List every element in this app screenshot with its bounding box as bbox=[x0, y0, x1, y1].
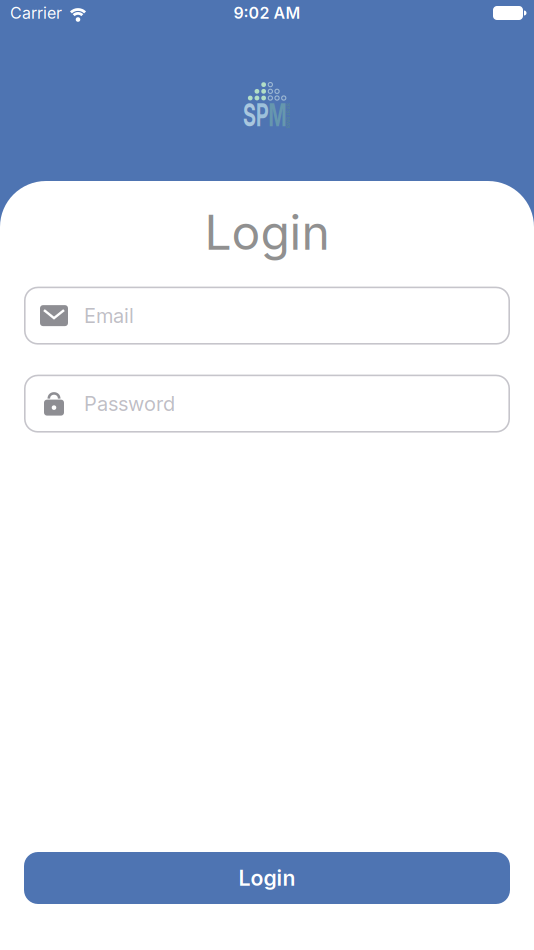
staticText: Login bbox=[204, 204, 329, 261]
staticText: Email bbox=[84, 304, 134, 327]
staticText: SYSTEMS bbox=[276, 112, 301, 119]
button[interactable]: Email bbox=[24, 287, 510, 345]
button[interactable]: Password bbox=[24, 375, 510, 433]
staticText: P bbox=[251, 96, 271, 133]
staticText: 9:02 AM bbox=[233, 4, 300, 22]
staticText: Password bbox=[84, 392, 175, 415]
button[interactable]: Login bbox=[24, 852, 510, 904]
staticText: M bbox=[271, 96, 300, 133]
staticText: S bbox=[230, 96, 251, 133]
staticText: Login bbox=[238, 865, 295, 891]
staticText: Carrier bbox=[10, 4, 62, 22]
